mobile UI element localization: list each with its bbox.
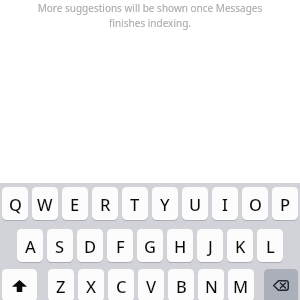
button[interactable]: L — [257, 229, 283, 262]
staticText: C — [116, 275, 127, 297]
staticText: F — [116, 235, 125, 257]
staticText: R — [100, 193, 111, 215]
button[interactable]: I — [212, 187, 238, 220]
button[interactable]: X — [78, 269, 104, 300]
staticText: K — [235, 235, 246, 257]
staticText: P — [280, 193, 291, 215]
staticText: T — [130, 193, 140, 215]
staticText: J — [208, 235, 213, 257]
button[interactable]: G — [137, 229, 163, 262]
button[interactable]: V — [138, 269, 164, 300]
staticText: G — [144, 235, 156, 257]
staticText: U — [189, 193, 202, 215]
button[interactable]: Shift — [2, 269, 37, 300]
button[interactable]: A — [17, 229, 43, 262]
staticText: N — [205, 275, 218, 297]
staticText: D — [84, 235, 97, 257]
staticText: M — [233, 275, 249, 297]
staticText: E — [70, 193, 80, 215]
staticText: I — [222, 193, 228, 215]
button[interactable]: H — [167, 229, 193, 262]
button[interactable]: N — [198, 269, 224, 300]
button[interactable]: R — [92, 187, 118, 220]
staticText: X — [86, 275, 97, 297]
button[interactable]: Backspace — [264, 269, 298, 300]
button[interactable]: E — [62, 187, 88, 220]
staticText: More suggestions will be shown once Mess… — [33, 1, 267, 30]
button[interactable]: F — [107, 229, 133, 262]
button[interactable]: M — [228, 269, 254, 300]
button[interactable]: O — [242, 187, 268, 220]
button[interactable]: B — [168, 269, 194, 300]
button[interactable]: Q — [2, 187, 28, 220]
staticText: Y — [160, 193, 170, 215]
button[interactable]: Y — [152, 187, 178, 220]
staticText: A — [25, 235, 36, 257]
staticText: B — [176, 275, 187, 297]
staticText: O — [249, 193, 262, 215]
button[interactable]: W — [32, 187, 58, 220]
staticText: H — [174, 235, 187, 257]
staticText: V — [146, 275, 157, 297]
button[interactable]: K — [227, 229, 253, 262]
button[interactable]: U — [182, 187, 208, 220]
button[interactable]: D — [77, 229, 103, 262]
button[interactable]: C — [108, 269, 134, 300]
button[interactable]: P — [272, 187, 298, 220]
staticText: W — [37, 193, 53, 215]
staticText: Z — [56, 275, 66, 297]
staticText: L — [266, 235, 275, 257]
button[interactable]: T — [122, 187, 148, 220]
staticText: Q — [9, 193, 22, 215]
button[interactable]: S — [47, 229, 73, 262]
button[interactable]: J — [197, 229, 223, 262]
button[interactable]: Z — [48, 269, 74, 300]
staticText: S — [55, 235, 65, 257]
